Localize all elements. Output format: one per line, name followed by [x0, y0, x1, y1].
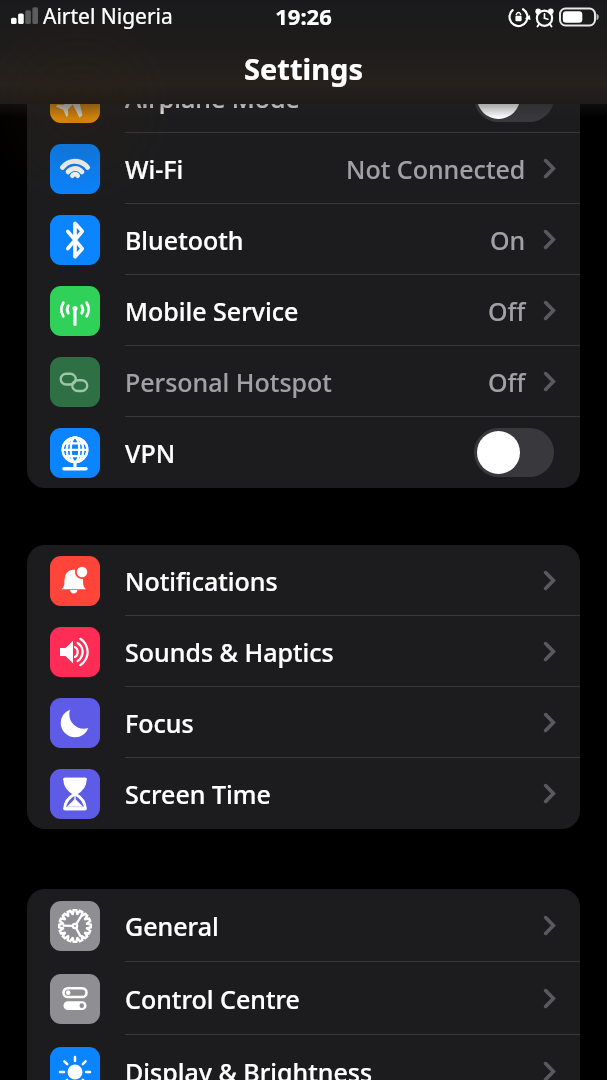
- button[interactable]: Wi-Fi: [27, 133, 580, 204]
- staticText: General: [125, 909, 219, 943]
- button[interactable]: Screen Time: [27, 758, 580, 829]
- staticText: Off: [488, 365, 526, 399]
- button[interactable]: Notifications: [27, 545, 580, 616]
- button[interactable]: Toggle VPN, off: [474, 428, 554, 477]
- button[interactable]: VPN: [27, 417, 580, 488]
- button[interactable]: Control Centre: [27, 962, 580, 1035]
- staticText: Personal Hotspot: [125, 365, 332, 399]
- button[interactable]: Airplane Mode: [27, 62, 580, 133]
- staticText: Wi-Fi: [125, 152, 184, 186]
- button[interactable]: Mobile Service: [27, 275, 580, 346]
- staticText: Off: [488, 294, 526, 328]
- staticText: Sounds & Haptics: [125, 635, 334, 669]
- staticText: Focus: [125, 706, 194, 740]
- staticText: Bluetooth: [125, 223, 244, 257]
- staticText: Display & Brightness: [125, 1055, 373, 1080]
- button[interactable]: Toggle Airplane Mode, off: [474, 73, 554, 122]
- button[interactable]: Bluetooth: [27, 204, 580, 275]
- staticText: Airplane Mode: [125, 81, 300, 115]
- staticText: 19:26: [0, 1, 607, 31]
- button[interactable]: Display & Brightness: [27, 1035, 580, 1080]
- button[interactable]: General: [27, 889, 580, 962]
- staticText: VPN: [125, 436, 176, 470]
- staticText: Not Connected: [346, 152, 526, 186]
- button[interactable]: Personal Hotspot: [27, 346, 580, 417]
- button[interactable]: Sounds & Haptics: [27, 616, 580, 687]
- staticText: Settings: [0, 49, 607, 88]
- staticText: Mobile Service: [125, 294, 299, 328]
- staticText: Control Centre: [125, 982, 300, 1016]
- staticText: On: [490, 223, 526, 257]
- staticText: Notifications: [125, 564, 278, 598]
- staticText: Airtel Nigeria: [43, 2, 173, 31]
- button[interactable]: Focus: [27, 687, 580, 758]
- staticText: Screen Time: [125, 777, 271, 811]
